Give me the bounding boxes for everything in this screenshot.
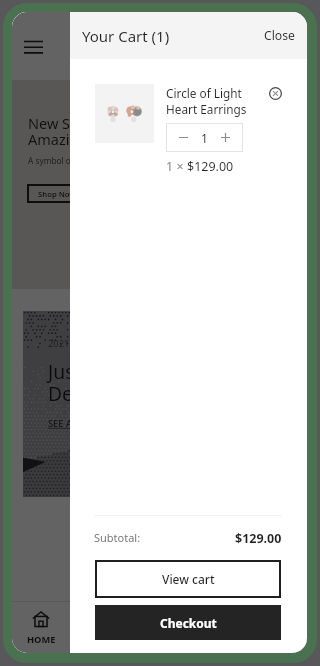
button[interactable]: Remove item (264, 82, 286, 104)
staticText: New Style Amazing (28, 113, 95, 149)
staticText: SEE ALL (48, 417, 82, 430)
staticText: Subtotal: (94, 530, 141, 545)
staticText: 1 × (166, 158, 187, 175)
staticText: 2021 (48, 337, 70, 350)
button[interactable]: Shop Now (27, 184, 87, 203)
staticText: Just Design (48, 358, 111, 406)
button[interactable]: Increase quantity (218, 130, 233, 145)
staticText: $129.00 (187, 158, 234, 175)
staticText: Your Cart (1) (82, 26, 170, 46)
button[interactable]: Checkout (95, 605, 281, 640)
button[interactable]: HOME (13, 602, 69, 653)
button[interactable]: SEE ALL (48, 417, 82, 430)
staticText: $129.00 (235, 530, 282, 547)
staticText: Shop Now (38, 189, 76, 199)
staticText: A symbol of love (28, 155, 92, 166)
staticText: Checkout (160, 615, 217, 631)
button[interactable]: Menu (19, 32, 48, 61)
staticText: HOME (27, 633, 56, 646)
button[interactable]: View cart (95, 560, 281, 598)
staticText: View cart (162, 571, 215, 587)
staticText: 1 (201, 130, 208, 146)
button[interactable]: Decrease quantity (176, 130, 191, 145)
staticText: Circle of Light Heart Earrings (166, 85, 247, 118)
staticText: Close (264, 27, 295, 44)
button[interactable]: Close (252, 12, 307, 59)
